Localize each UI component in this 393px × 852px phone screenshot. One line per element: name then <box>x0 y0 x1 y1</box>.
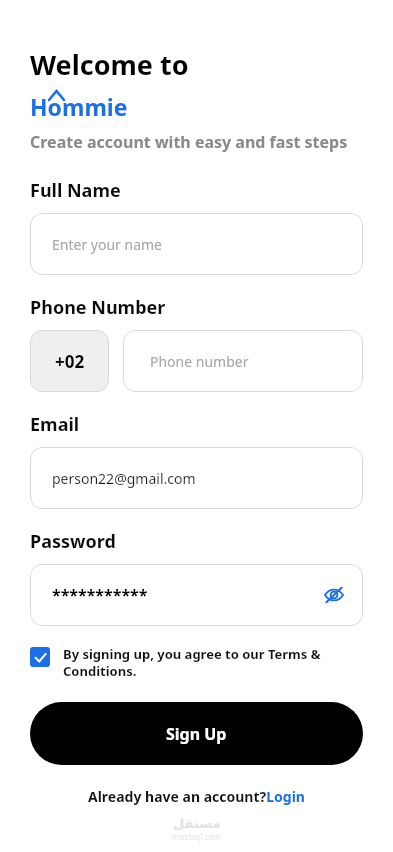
button[interactable]: Already have an account?Login <box>88 787 305 806</box>
button[interactable]: person22@gmail.com <box>30 447 363 509</box>
button[interactable]: Phone number <box>123 330 363 392</box>
staticText: Hommie <box>30 91 128 117</box>
staticText: Sign Up <box>166 723 227 745</box>
button[interactable]: By signing up, you agree to our Terms & … <box>30 645 363 680</box>
button[interactable]: Toggle password visibility <box>317 578 351 612</box>
staticText: Phone Number <box>30 295 166 320</box>
staticText: Phone number <box>150 352 249 371</box>
staticText: Create account with easy and fast steps <box>30 131 348 153</box>
staticText: mostaql.com <box>172 831 221 842</box>
button[interactable]: +02 <box>30 330 109 392</box>
button[interactable]: Sign Up <box>30 702 363 765</box>
staticText: *********** <box>52 584 148 606</box>
staticText: مستقل <box>173 816 221 831</box>
button[interactable]: *********** <box>30 564 363 626</box>
staticText: Already have an account?Login <box>88 787 305 806</box>
staticText: Password <box>30 529 116 554</box>
staticText: person22@gmail.com <box>52 469 196 488</box>
button[interactable]: Enter your name <box>30 213 363 275</box>
staticText: Email <box>30 412 80 437</box>
staticText: Enter your name <box>52 235 162 254</box>
staticText: Welcome to <box>30 46 189 83</box>
staticText: By signing up, you agree to our Terms & … <box>63 645 363 680</box>
staticText: Full Name <box>30 178 121 203</box>
staticText: +02 <box>55 350 85 373</box>
